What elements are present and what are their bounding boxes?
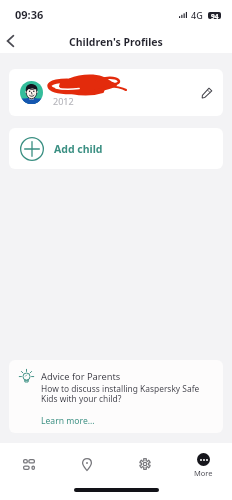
staticText: Advice for Parents bbox=[41, 370, 121, 383]
staticText: How to discuss installing Kaspersky Safe… bbox=[41, 383, 200, 404]
staticText: 94 bbox=[211, 12, 219, 19]
button[interactable]: 2012 bbox=[9, 69, 223, 116]
button[interactable]: Learn more... bbox=[41, 415, 95, 427]
button[interactable]: Back bbox=[0, 27, 20, 54]
button[interactable]: More bbox=[174, 443, 232, 485]
staticText: 2012 bbox=[53, 95, 74, 107]
staticText: More bbox=[194, 468, 213, 478]
staticText: Add child bbox=[54, 142, 103, 156]
button[interactable]: Location bbox=[58, 443, 116, 485]
button[interactable]: Advice for Parents bbox=[9, 360, 223, 433]
button[interactable]: Edit profile bbox=[194, 69, 220, 116]
button[interactable]: Dashboard bbox=[0, 443, 58, 485]
staticText: 4G bbox=[191, 9, 203, 21]
staticText: 09:36 bbox=[15, 7, 44, 22]
button[interactable]: Add child bbox=[9, 128, 223, 169]
button[interactable]: Settings bbox=[116, 443, 174, 485]
staticText: Children's Profiles bbox=[69, 35, 163, 49]
